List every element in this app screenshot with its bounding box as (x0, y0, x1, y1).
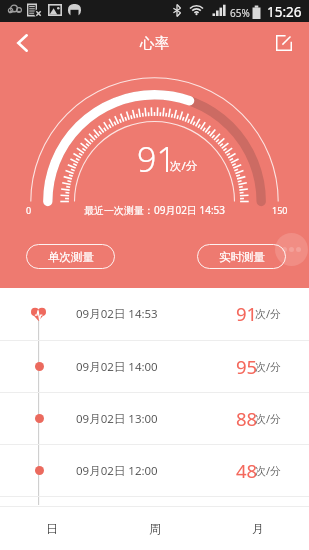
staticText: 周 (149, 521, 161, 536)
button[interactable]: Back (0, 22, 44, 64)
button[interactable]: 实时测量 (197, 244, 286, 269)
button[interactable]: 周 (103, 507, 206, 550)
staticText: 48 (236, 458, 258, 483)
staticText: 88 (236, 406, 258, 431)
button[interactable]: 日 (0, 507, 103, 550)
button[interactable]: More options (275, 233, 308, 266)
staticText: 次/分 (170, 158, 198, 174)
staticText: 单次测量 (48, 250, 94, 264)
button[interactable]: Share (262, 22, 306, 64)
staticText: 15:26 (267, 3, 302, 21)
staticText: 09月02日 14:53 (76, 306, 236, 322)
button[interactable]: 09月02日 13:00 (0, 393, 309, 444)
staticText: 实时测量 (219, 250, 265, 264)
button[interactable]: 单次测量 (26, 244, 115, 269)
staticText: 次/分 (255, 359, 282, 374)
staticText: 150 (272, 204, 288, 216)
button[interactable]: 09月02日 14:00 (0, 341, 309, 392)
button[interactable]: 月 (206, 507, 309, 550)
staticText: 0 (26, 204, 32, 216)
staticText: 09月02日 14:00 (76, 359, 236, 375)
staticText: 95 (236, 354, 258, 379)
staticText: 最近一次测量：09月02日 14:53 (84, 203, 226, 217)
button[interactable]: 09月02日 12:00 (0, 445, 309, 496)
button[interactable]: 09月02日 14:53 (0, 288, 309, 340)
staticText: 65% (230, 6, 250, 20)
staticText: 91 (137, 136, 176, 182)
staticText: 次/分 (255, 463, 282, 478)
staticText: 日 (46, 521, 58, 536)
staticText: 09月02日 12:00 (76, 463, 236, 479)
staticText: 91 (236, 301, 258, 326)
staticText: 09月02日 13:00 (76, 411, 236, 427)
staticText: 心率 (140, 34, 169, 52)
staticText: 月 (252, 521, 264, 536)
staticText: 次/分 (255, 306, 282, 321)
staticText: 次/分 (255, 411, 282, 426)
